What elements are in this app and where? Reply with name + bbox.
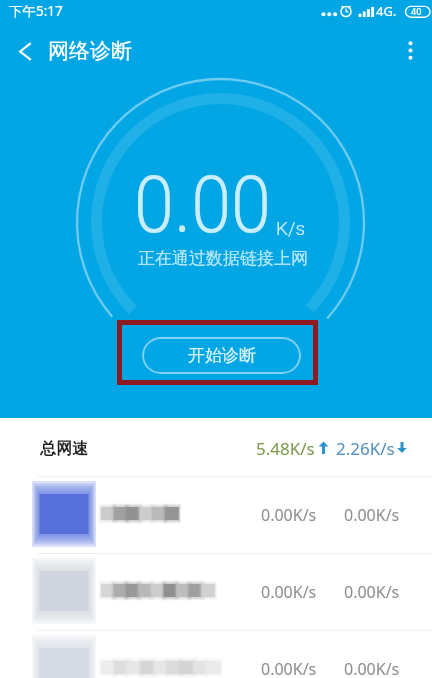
staticText: 正在通过数据链接上网 bbox=[138, 248, 308, 269]
staticText: 0.00K/s bbox=[344, 581, 400, 603]
button[interactable]: Back bbox=[3, 29, 47, 73]
staticText: 0.00K/s bbox=[344, 504, 400, 526]
button[interactable]: 0.00K/s bbox=[0, 630, 432, 678]
staticText: 总网速 bbox=[40, 439, 88, 459]
staticText: 40 bbox=[411, 5, 422, 17]
staticText: 2.26K/s bbox=[336, 437, 395, 460]
button[interactable]: 0.00K/s bbox=[0, 476, 432, 553]
staticText: 0.00K/s bbox=[261, 581, 317, 603]
staticText: 0.00K/s bbox=[344, 658, 400, 678]
staticText: 4G bbox=[376, 2, 393, 20]
staticText: 5.48K/s bbox=[256, 437, 315, 460]
staticText: 0.00K/s bbox=[261, 504, 317, 526]
button[interactable]: 0.00K/s bbox=[0, 553, 432, 630]
staticText: 网络诊断 bbox=[48, 38, 132, 64]
staticText: K/s bbox=[276, 217, 306, 239]
staticText: 0.00 bbox=[134, 158, 272, 252]
staticText: 下午5:17 bbox=[9, 2, 63, 20]
button[interactable]: 开始诊断 bbox=[142, 337, 301, 374]
staticText: 开始诊断 bbox=[188, 345, 256, 366]
button[interactable]: More options bbox=[388, 28, 432, 72]
staticText: 0.00K/s bbox=[261, 658, 317, 678]
